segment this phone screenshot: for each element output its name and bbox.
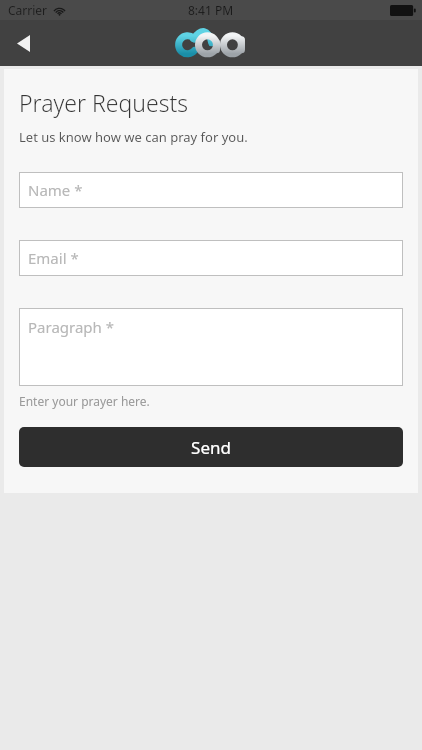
button[interactable]: Email * bbox=[19, 240, 403, 276]
staticText: Paragraph * bbox=[28, 317, 114, 337]
button[interactable]: Paragraph * bbox=[19, 308, 403, 386]
staticText: Prayer Requests bbox=[19, 87, 188, 118]
staticText: Enter your prayer here. bbox=[19, 393, 150, 409]
staticText: Carrier bbox=[8, 2, 48, 18]
staticText: Email * bbox=[28, 248, 79, 268]
staticText: 8:41 PM bbox=[188, 2, 234, 18]
button[interactable]: Name * bbox=[19, 172, 403, 208]
staticText: Name * bbox=[28, 180, 83, 200]
button[interactable]: Back bbox=[0, 20, 46, 66]
staticText: Send bbox=[191, 436, 231, 459]
staticText: Let us know how we can pray for you. bbox=[19, 128, 248, 146]
button[interactable]: Send bbox=[19, 427, 403, 467]
